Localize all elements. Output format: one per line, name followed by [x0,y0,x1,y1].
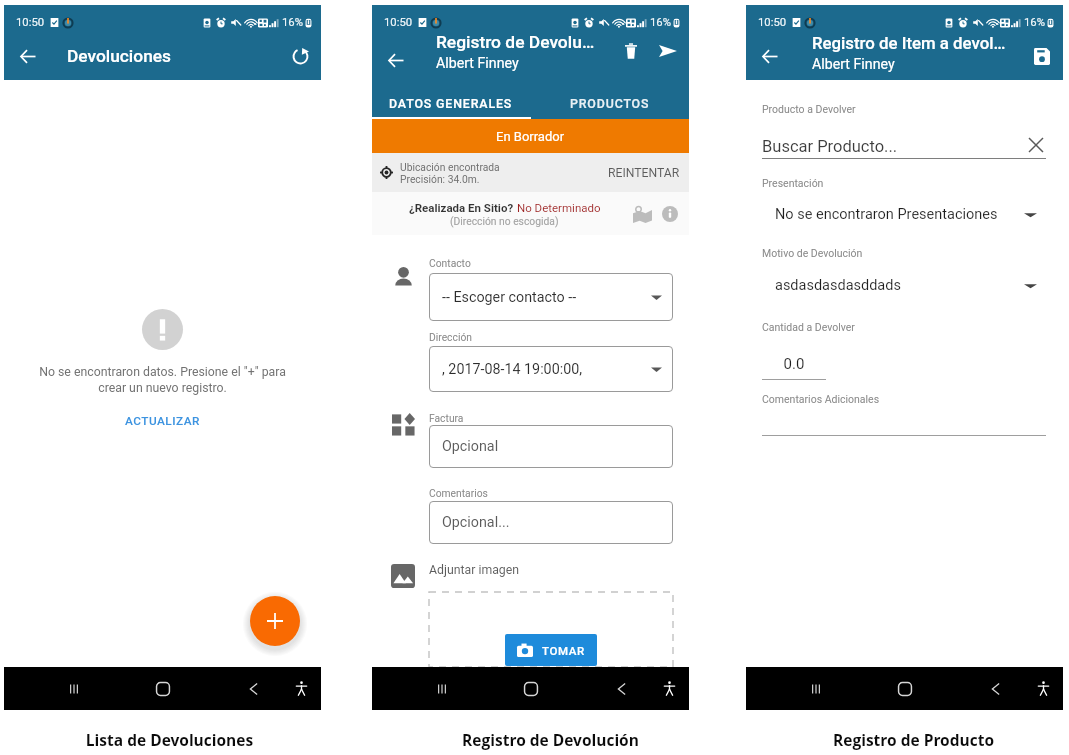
button[interactable]: Back [973,667,1017,710]
staticText: En Borrador [496,129,565,144]
staticText: No se encontraron Presentaciones [775,206,1024,223]
staticText: Motivo de Devolución [762,247,863,259]
button[interactable]: Back [379,43,413,77]
staticText: 16% [650,16,671,29]
staticText: No Determinado [517,201,601,214]
button[interactable]: Home [509,667,553,710]
staticText: Albert Finney [436,55,519,72]
button[interactable]: , 2017-08-14 19:00:00, [429,346,673,392]
button[interactable]: Back [753,39,787,73]
button[interactable]: No se encontraron Presentaciones [762,206,1046,223]
staticText: Adjuntar imagen [429,563,520,577]
button[interactable]: ACTUALIZAR [117,411,208,431]
button[interactable]: Recents [794,667,838,710]
button[interactable]: PRODUCTOS [530,88,689,119]
button[interactable]: Opcional [429,425,673,468]
staticText: 16% [282,16,303,29]
button[interactable]: Accessibility [1021,667,1065,710]
button[interactable]: REINTENTAR [608,160,680,186]
staticText: 10:50 [384,16,413,29]
button[interactable]: TOMAR [505,634,597,666]
button[interactable]: Accessibility [279,667,323,710]
staticText: DATOS GENERALES [389,96,513,111]
staticText: Opcional... [442,514,662,531]
button[interactable]: asdasdasdasddads [762,277,1046,294]
button[interactable]: Back [599,667,643,710]
staticText: 10:50 [16,16,45,29]
button[interactable]: Add [250,596,300,646]
staticText: Opcional [442,438,662,455]
staticText: Albert Finney [812,56,895,73]
staticText: asdasdasdasddads [775,277,1024,294]
button[interactable]: Recents [420,667,464,710]
button[interactable]: -- Escoger contacto -- [429,273,673,321]
staticText: REINTENTAR [608,166,680,180]
button[interactable]: Back [231,667,275,710]
button[interactable]: DATOS GENERALES [372,88,530,119]
staticText: Presentación [762,177,824,189]
staticText: PRODUCTOS [570,96,650,111]
staticText: 16% [1024,16,1045,29]
button[interactable]: Clear [1026,135,1046,155]
staticText: Ubicación encontrada [400,161,500,173]
button[interactable]: Opcional... [429,501,673,544]
staticText: Factura [429,412,464,424]
button[interactable]: Map [629,200,656,227]
staticText: Contacto [429,257,471,269]
staticText: Devoluciones [67,46,171,66]
staticText: (Dirección no escogida) [450,215,559,227]
staticText: Comentarios Adicionales [762,393,880,405]
staticText: Registro de Devolución [392,729,709,750]
staticText: Precisión: 34.0m. [400,173,480,185]
staticText: -- Escoger contacto -- [442,289,651,306]
button[interactable]: Refresh [283,39,317,73]
button[interactable]: Home [883,667,927,710]
staticText: Producto a Devolver [762,103,856,115]
staticText: ACTUALIZAR [125,414,200,428]
staticText: ¿Realizada En Sitio? [409,201,517,214]
staticText: No se encontraron datos. Presione el "+"… [4,365,321,395]
staticText: TOMAR [542,644,585,657]
button[interactable]: Save [1026,40,1058,72]
staticText: Comentarios [429,487,488,499]
button[interactable]: Info [656,200,683,227]
staticText: Dirección [429,331,472,343]
staticText: 10:50 [758,16,787,29]
staticText: Registro de Producto [755,729,1069,750]
button[interactable]: Delete [615,35,647,67]
staticText: Registro de Item a devol… [812,33,1006,53]
button[interactable]: Recents [52,667,96,710]
staticText: Cantidad a Devolver [762,321,855,333]
staticText: Buscar Producto... [762,137,1026,156]
button[interactable]: Accessibility [647,667,691,710]
button[interactable]: Home [141,667,185,710]
button[interactable]: En Borrador [372,119,689,153]
button[interactable]: Send [652,35,684,67]
staticText: , 2017-08-14 19:00:00, [442,361,651,378]
staticText: Lista de Devoluciones [11,729,328,750]
button[interactable]: Back [11,39,45,73]
staticText: 0.0 [762,355,826,373]
staticText: Registro de Devolu… [436,32,595,52]
